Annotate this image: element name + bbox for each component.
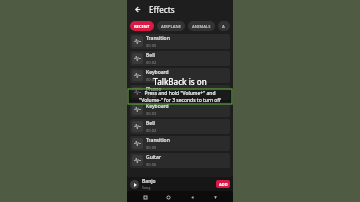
staticText: Bell — [146, 52, 155, 59]
button[interactable]: Keyboard — [130, 68, 230, 83]
staticText: Keyboard — [146, 103, 169, 110]
staticText: 00:06 — [146, 162, 157, 167]
staticText: 00:02 — [146, 128, 157, 133]
staticText: RECENT — [134, 24, 150, 29]
staticText: Keyboard — [146, 69, 169, 76]
staticText: Banjo — [142, 178, 156, 185]
staticText: Transition — [146, 35, 170, 42]
staticText: Song — [142, 185, 151, 190]
staticText: 00:03 — [146, 111, 157, 116]
button[interactable]: AIRPLANE — [157, 21, 185, 31]
button[interactable]: Back — [131, 3, 143, 15]
staticText: 00:02 — [146, 60, 157, 65]
staticText: Guitar — [146, 154, 162, 161]
button[interactable]: Back — [187, 192, 197, 202]
staticText: 00:03 — [146, 77, 157, 82]
staticText: TalkBack is on — [153, 76, 207, 87]
button[interactable]: Play — [127, 177, 233, 191]
staticText: Transition — [146, 137, 170, 144]
staticText: Phone — [146, 86, 162, 93]
staticText: APPLAUSE — [222, 24, 226, 29]
staticText: Bell — [146, 120, 155, 127]
button[interactable]: ANIMALS — [188, 21, 215, 31]
staticText: ADD — [219, 182, 228, 187]
staticText: ANIMALS — [192, 24, 211, 29]
button[interactable]: Home — [163, 192, 173, 202]
button[interactable]: Bell — [130, 51, 230, 66]
button[interactable]: Keyboard — [130, 102, 230, 117]
staticText: 00:05 — [146, 145, 157, 150]
button[interactable]: Phone — [130, 85, 230, 100]
button[interactable]: Play — [130, 180, 139, 189]
button[interactable]: APPLAUSE — [218, 21, 230, 31]
button[interactable]: Keyboard — [210, 192, 220, 202]
button[interactable]: Transition — [130, 34, 230, 49]
button[interactable]: Recents — [140, 192, 150, 202]
button[interactable]: Bell — [130, 119, 230, 134]
staticText: AIRPLANE — [161, 24, 181, 29]
button[interactable]: ADD — [216, 180, 230, 188]
staticText: Effects — [149, 4, 175, 15]
button[interactable]: Guitar — [130, 153, 230, 168]
button[interactable]: Transition — [130, 136, 230, 151]
button[interactable]: RECENT — [130, 21, 154, 31]
staticText: 00:05 — [146, 43, 157, 48]
staticText: Press and hold "Volume+" and "Volume-" f… — [139, 90, 221, 103]
staticText: 00:04 — [146, 94, 157, 99]
